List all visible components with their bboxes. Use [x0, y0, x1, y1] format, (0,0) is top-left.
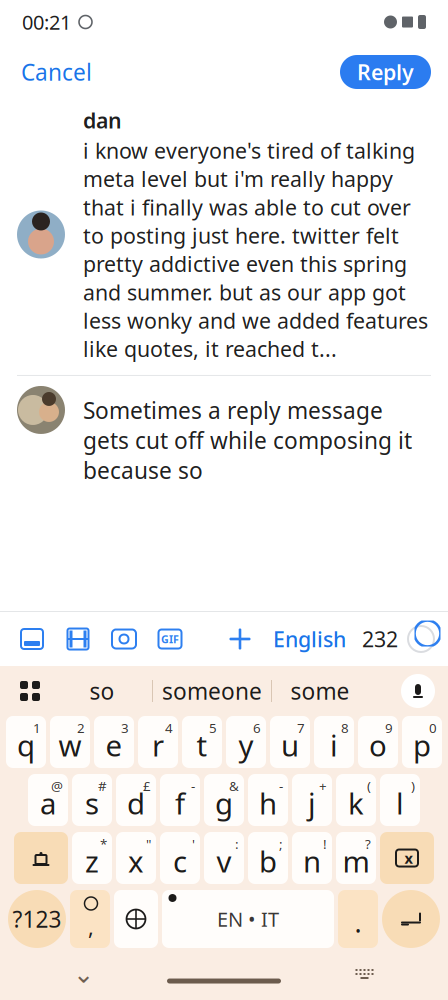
- staticText: i know everyone's tired of talking meta …: [83, 136, 428, 363]
- button[interactable]: Camera: [104, 619, 144, 659]
- button[interactable]: someone: [153, 669, 271, 713]
- button[interactable]: ?: [336, 832, 376, 884]
- staticText: -: [279, 777, 283, 795]
- staticText: 3: [121, 719, 129, 737]
- staticText: -: [191, 777, 195, 795]
- staticText: ,: [88, 913, 94, 941]
- staticText: q: [17, 725, 35, 764]
- button[interactable]: so: [52, 669, 152, 713]
- staticText: Cancel: [21, 57, 92, 87]
- button[interactable]: More: [223, 619, 257, 659]
- button[interactable]: :: [204, 832, 244, 884]
- staticText: 0: [429, 719, 437, 737]
- staticText: x: [404, 848, 412, 868]
- staticText: ": [146, 835, 151, 853]
- button[interactable]: ): [380, 774, 420, 826]
- staticText: ?: [365, 835, 371, 853]
- staticText: ⌄: [73, 960, 94, 988]
- staticText: some: [290, 676, 349, 706]
- button[interactable]: -: [160, 774, 200, 826]
- staticText: someone: [162, 676, 262, 706]
- button[interactable]: !: [292, 832, 332, 884]
- button[interactable]: ?123: [8, 890, 66, 948]
- button[interactable]: Add photo: [12, 619, 52, 659]
- staticText: (: [367, 777, 371, 795]
- button[interactable]: 6: [226, 716, 266, 768]
- button[interactable]: 9: [358, 716, 398, 768]
- staticText: v: [216, 841, 231, 880]
- staticText: dan: [83, 106, 122, 134]
- button[interactable]: Hide keyboard: [61, 952, 105, 996]
- staticText: w: [58, 725, 81, 764]
- staticText: ;: [279, 835, 283, 853]
- staticText: m: [342, 841, 369, 880]
- button[interactable]: Return: [382, 890, 440, 948]
- staticText: ': [192, 835, 195, 853]
- staticText: e: [105, 725, 122, 764]
- button[interactable]: Backspace: [380, 832, 434, 884]
- staticText: u: [281, 725, 299, 764]
- button[interactable]: &: [204, 774, 244, 826]
- staticText: s: [85, 783, 99, 822]
- staticText: EN • IT: [217, 906, 279, 932]
- staticText: Sometimes a reply message gets cut off w…: [83, 395, 412, 485]
- button[interactable]: Emoji and comma: [70, 890, 110, 948]
- staticText: English: [273, 625, 346, 653]
- staticText: Reply: [357, 58, 414, 86]
- button[interactable]: some: [272, 669, 368, 713]
- staticText: +: [319, 777, 327, 795]
- staticText: i: [330, 725, 338, 764]
- button[interactable]: ;: [248, 832, 288, 884]
- staticText: #: [98, 777, 107, 795]
- button[interactable]: Reply: [340, 55, 431, 89]
- staticText: :: [235, 835, 239, 853]
- staticText: 4: [165, 719, 173, 737]
- staticText: d: [127, 783, 145, 822]
- staticText: so: [89, 676, 114, 706]
- button[interactable]: Add video: [58, 619, 98, 659]
- staticText: a: [40, 783, 56, 822]
- staticText: n: [303, 841, 321, 880]
- staticText: &: [229, 777, 239, 795]
- staticText: t: [196, 725, 207, 764]
- button[interactable]: -: [248, 774, 288, 826]
- staticText: *: [100, 835, 107, 853]
- button[interactable]: (: [336, 774, 376, 826]
- button[interactable]: Voice input: [396, 669, 440, 713]
- button[interactable]: *: [72, 832, 112, 884]
- staticText: 6: [253, 719, 261, 737]
- staticText: g: [215, 783, 233, 822]
- staticText: h: [259, 783, 277, 822]
- staticText: 8: [341, 719, 349, 737]
- button[interactable]: ': [160, 832, 200, 884]
- button[interactable]: Shift: [14, 832, 68, 884]
- button[interactable]: 4: [138, 716, 178, 768]
- button[interactable]: Add GIF: [150, 619, 190, 659]
- button[interactable]: Space: [162, 890, 334, 948]
- button[interactable]: £: [116, 774, 156, 826]
- staticText: y: [238, 725, 253, 764]
- button[interactable]: 8: [314, 716, 354, 768]
- staticText: f: [175, 783, 185, 822]
- button[interactable]: ": [116, 832, 156, 884]
- staticText: 7: [297, 719, 305, 737]
- staticText: 2: [77, 719, 85, 737]
- button[interactable]: +: [292, 774, 332, 826]
- staticText: x: [128, 841, 144, 880]
- staticText: o: [369, 725, 387, 764]
- button[interactable]: #: [72, 774, 112, 826]
- button[interactable]: 0: [402, 716, 442, 768]
- button[interactable]: Switch keyboard: [342, 952, 386, 996]
- button[interactable]: Cancel: [17, 49, 96, 95]
- button[interactable]: 7: [270, 716, 310, 768]
- button[interactable]: English: [267, 619, 352, 659]
- button[interactable]: 3: [94, 716, 134, 768]
- button[interactable]: 5: [182, 716, 222, 768]
- button[interactable]: @: [28, 774, 68, 826]
- staticText: 9: [385, 719, 393, 737]
- button[interactable]: Change language: [114, 890, 158, 948]
- button[interactable]: Period: [338, 890, 378, 948]
- button[interactable]: 1: [6, 716, 46, 768]
- button[interactable]: Keyboard toolbar: [8, 669, 52, 713]
- button[interactable]: 2: [50, 716, 90, 768]
